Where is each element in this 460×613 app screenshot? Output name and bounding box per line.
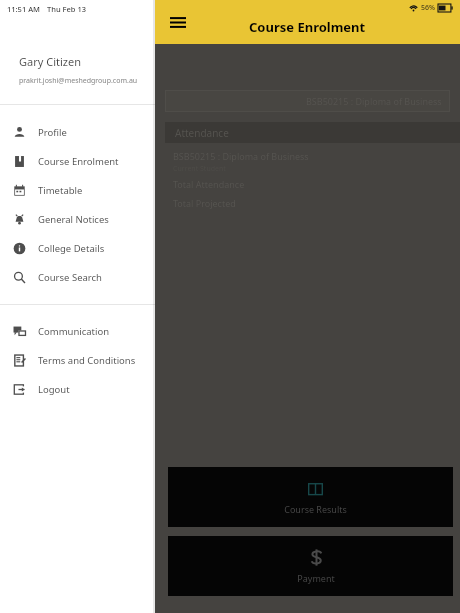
staticText: Timetable	[38, 184, 83, 197]
button[interactable]: Logout	[0, 375, 155, 404]
button[interactable]: Terms and Conditions	[0, 346, 155, 375]
staticText: Total Projected	[173, 197, 236, 209]
button[interactable]: Payment	[168, 536, 453, 596]
staticText: Course Results	[284, 503, 347, 515]
button[interactable]: Timetable	[0, 176, 155, 205]
button[interactable]: General Notices	[0, 205, 155, 234]
staticText: Thu Feb 13	[47, 4, 87, 14]
staticText: BSB50215 : Diploma of Business	[306, 95, 442, 107]
staticText: General Notices	[38, 213, 109, 226]
staticText: Payment	[297, 572, 335, 584]
staticText: Communication	[38, 325, 110, 338]
staticText: Profile	[38, 126, 67, 139]
staticText: 56%	[421, 3, 435, 13]
staticText: College Details	[38, 242, 105, 255]
staticText: Logout	[38, 383, 70, 396]
button[interactable]: Communication	[0, 317, 155, 346]
staticText: Total Attendance	[173, 178, 245, 190]
staticText: Terms and Conditions	[38, 354, 136, 367]
staticText: BSB50215 : Diploma of Business	[173, 150, 309, 162]
staticText: Course Enrolment	[38, 155, 119, 168]
staticText: prakrit.joshi@meshedgroup.com.au	[19, 76, 138, 86]
button[interactable]: Profile	[0, 118, 155, 147]
button[interactable]: Open navigation drawer	[161, 5, 195, 39]
staticText: Course Search	[38, 271, 102, 284]
button[interactable]: College Details	[0, 234, 155, 263]
button[interactable]: Course Search	[0, 263, 155, 292]
staticText: 11:51 AM	[7, 4, 40, 14]
staticText: Attendance	[175, 126, 229, 140]
staticText: Course Enrolment	[249, 18, 366, 36]
staticText: Gary Citizen	[19, 54, 81, 69]
button[interactable]: Course Results	[168, 467, 453, 527]
button[interactable]: Course Enrolment	[0, 147, 155, 176]
